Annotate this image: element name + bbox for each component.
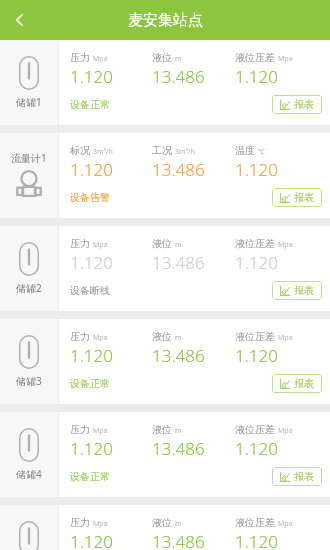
staticText: 1.120 — [235, 437, 278, 460]
button[interactable]: 报表 — [272, 281, 322, 300]
staticText: 报表 — [294, 98, 314, 111]
staticText: 液位 — [152, 423, 172, 436]
button[interactable]: 报表 — [272, 188, 322, 207]
staticText: 液位 — [152, 237, 172, 250]
staticText: 1.120 — [70, 65, 113, 88]
staticText: Mpa — [93, 240, 108, 250]
staticText: 温度 — [235, 144, 255, 157]
staticText: 报表 — [294, 470, 314, 483]
staticText: 1.120 — [70, 344, 113, 367]
button[interactable]: 储罐4 — [0, 412, 330, 497]
button[interactable]: 报表 — [272, 374, 322, 393]
staticText: 工况 — [152, 144, 172, 157]
staticText: Mpa — [93, 519, 108, 529]
staticText: 1.120 — [70, 158, 113, 181]
staticText: 标况 — [70, 144, 90, 157]
staticText: 储罐3 — [16, 374, 42, 388]
button[interactable]: 报表 — [272, 467, 322, 486]
button[interactable]: 储罐1 — [0, 40, 330, 125]
staticText: m — [175, 240, 182, 250]
staticText: 报表 — [294, 191, 314, 204]
button[interactable]: 流量计1 — [0, 133, 330, 218]
staticText: 1.120 — [235, 251, 278, 274]
staticText: 13.486 — [152, 437, 205, 460]
staticText: Mpa — [93, 333, 108, 343]
staticText: 13.486 — [152, 344, 205, 367]
staticText: 流量计1 — [11, 151, 47, 165]
staticText: 压力 — [70, 51, 90, 64]
staticText: 压力 — [70, 423, 90, 436]
staticText: Mpa — [278, 240, 293, 250]
staticText: 13.486 — [152, 158, 205, 181]
button[interactable]: 储罐3 — [0, 319, 330, 404]
staticText: Mpa — [278, 519, 293, 529]
staticText: 1.120 — [235, 158, 278, 181]
staticText: Mpa — [93, 426, 108, 436]
staticText: 设备正常 — [70, 98, 110, 111]
staticText: 液位 — [152, 330, 172, 343]
staticText: Mpa — [278, 54, 293, 64]
staticText: m — [175, 519, 182, 529]
staticText: Mpa — [93, 54, 108, 64]
staticText: 1.120 — [70, 437, 113, 460]
button[interactable]: 储罐5 — [0, 505, 330, 550]
staticText: Mpa — [278, 333, 293, 343]
button[interactable]: 储罐2 — [0, 226, 330, 311]
staticText: 3m³/h — [175, 147, 195, 157]
staticText: m — [175, 333, 182, 343]
staticText: 报表 — [294, 377, 314, 390]
staticText: 报表 — [294, 284, 314, 297]
staticText: 液位压差 — [235, 330, 275, 343]
staticText: 1.120 — [235, 65, 278, 88]
staticText: 设备断线 — [70, 284, 110, 297]
button[interactable]: 报表 — [272, 95, 322, 114]
staticText: 压力 — [70, 330, 90, 343]
staticText: 储罐2 — [16, 281, 42, 295]
staticText: 压力 — [70, 237, 90, 250]
staticText: 液位压差 — [235, 237, 275, 250]
staticText: 液位 — [152, 51, 172, 64]
staticText: 麦安集站点 — [128, 11, 203, 30]
staticText: 压力 — [70, 516, 90, 529]
staticText: m — [175, 426, 182, 436]
staticText: 1.120 — [235, 344, 278, 367]
staticText: Mpa — [278, 426, 293, 436]
staticText: 1.120 — [70, 530, 113, 550]
staticText: 13.486 — [152, 65, 205, 88]
staticText: m — [175, 54, 182, 64]
staticText: 储罐1 — [16, 95, 42, 109]
staticText: 液位 — [152, 516, 172, 529]
staticText: 1.120 — [70, 251, 113, 274]
staticText: 设备告警 — [70, 191, 110, 204]
staticText: 1.120 — [235, 530, 278, 550]
staticText: 13.486 — [152, 530, 205, 550]
staticText: ℃ — [258, 147, 265, 157]
staticText: 3m³/h — [93, 147, 113, 157]
staticText: 13.486 — [152, 251, 205, 274]
staticText: 液位压差 — [235, 51, 275, 64]
button[interactable]: Back — [0, 0, 40, 40]
staticText: 液位压差 — [235, 516, 275, 529]
staticText: 储罐4 — [16, 467, 42, 481]
staticText: 设备正常 — [70, 377, 110, 390]
staticText: 液位压差 — [235, 423, 275, 436]
staticText: 设备正常 — [70, 470, 110, 483]
